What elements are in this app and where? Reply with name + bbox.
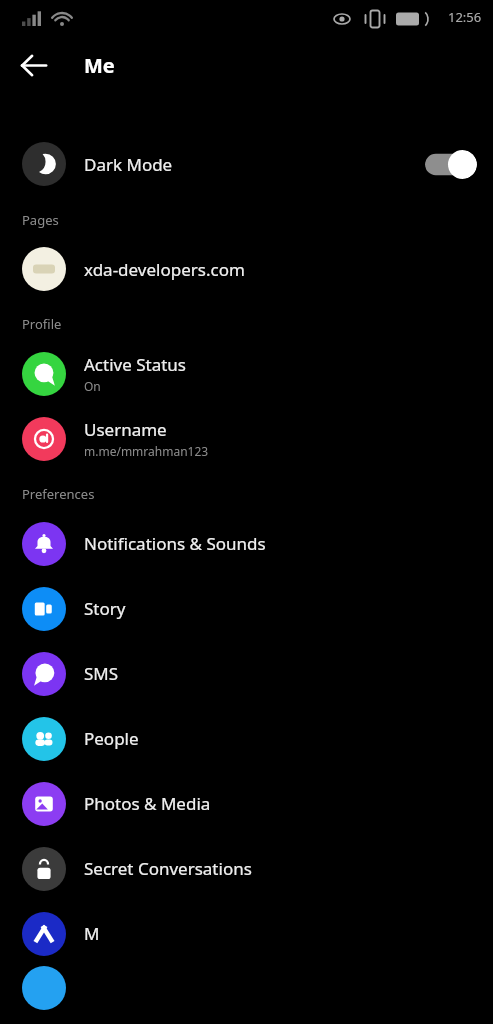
button[interactable]: Story — [0, 576, 493, 641]
button[interactable]: Active Status — [0, 341, 493, 406]
button[interactable]: Secret Conversations — [0, 836, 493, 901]
staticText: Notifications & Sounds — [84, 532, 266, 555]
button[interactable]: Dark Mode toggle — [425, 150, 477, 179]
staticText: 12:56 — [448, 8, 482, 26]
staticText: Profile — [22, 315, 62, 333]
staticText: Secret Conversations — [84, 857, 252, 880]
button[interactable]: Photos & Media — [0, 771, 493, 836]
button[interactable]: Dark Mode — [0, 133, 493, 195]
staticText: People — [84, 727, 139, 750]
staticText: M — [84, 922, 100, 945]
staticText: xda-developers.com — [84, 258, 245, 281]
staticText: Preferences — [22, 485, 95, 503]
button[interactable]: Username — [0, 406, 493, 471]
button[interactable]: Back — [9, 41, 57, 89]
staticText: Pages — [22, 211, 59, 229]
button[interactable]: Notifications & Sounds — [0, 511, 493, 576]
staticText: SMS — [84, 662, 119, 685]
button[interactable]: xda-developers.com — [0, 239, 493, 299]
staticText: Dark Mode — [84, 153, 173, 176]
button[interactable] — [0, 966, 493, 1024]
button[interactable]: People — [0, 706, 493, 771]
staticText: On — [84, 378, 101, 394]
staticText: Username — [84, 418, 167, 441]
staticText: Photos & Media — [84, 792, 211, 815]
button[interactable]: M — [0, 901, 493, 966]
staticText: Story — [84, 597, 126, 620]
staticText: Active Status — [84, 353, 186, 376]
staticText: m.me/mmrahman123 — [84, 443, 209, 459]
button[interactable]: SMS — [0, 641, 493, 706]
staticText: Me — [84, 52, 115, 79]
